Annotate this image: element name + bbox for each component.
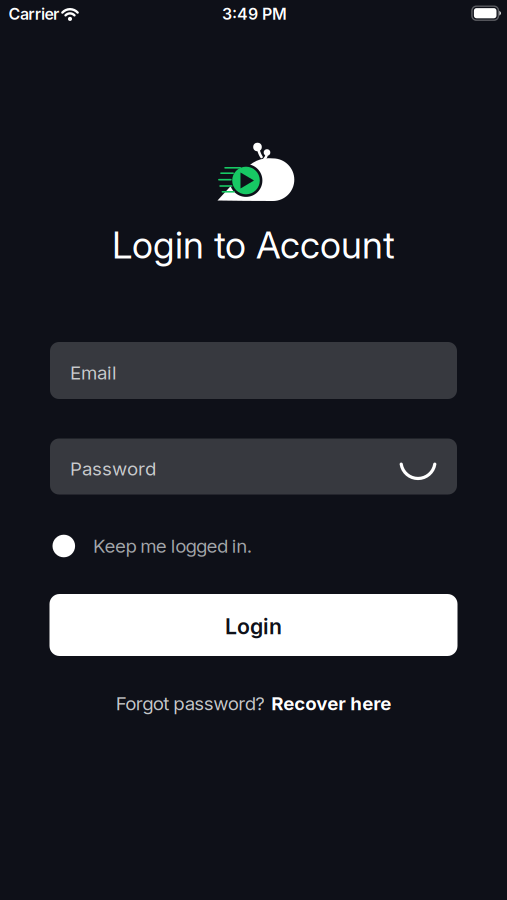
staticText: Login: [225, 614, 282, 639]
button[interactable]: Recover here: [271, 692, 391, 714]
button[interactable]: Password: [50, 438, 457, 494]
staticText: Password: [70, 458, 156, 480]
button[interactable]: Show password: [401, 459, 435, 481]
staticText: 3:49 PM: [222, 5, 287, 23]
staticText: Recover here: [271, 692, 391, 714]
staticText: Login to Account: [112, 223, 395, 267]
staticText: Keep me logged in.: [93, 535, 252, 557]
staticText: Forgot password?: [116, 692, 265, 714]
button[interactable]: Login: [49, 594, 457, 656]
staticText: Carrier: [8, 5, 59, 23]
button[interactable]: Keep me logged in.: [50, 535, 457, 557]
button[interactable]: Email: [50, 342, 457, 399]
staticText: Email: [70, 362, 117, 384]
